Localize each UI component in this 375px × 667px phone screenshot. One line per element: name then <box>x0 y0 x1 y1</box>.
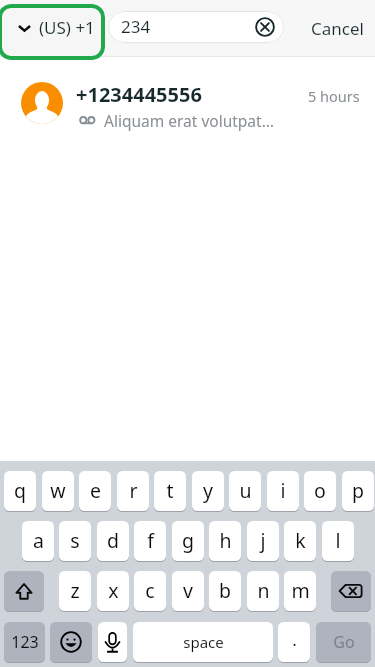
button[interactable]: v <box>172 571 204 611</box>
staticText: l <box>335 527 341 554</box>
staticText: Cancel <box>311 17 364 40</box>
staticText: 5 hours <box>308 86 360 106</box>
button[interactable]: r <box>117 471 149 511</box>
staticText: b <box>219 577 231 604</box>
staticText: w <box>50 477 66 504</box>
staticText: z <box>70 577 80 604</box>
staticText: g <box>182 527 194 554</box>
button[interactable]: 123 <box>4 622 45 662</box>
staticText: f <box>147 527 154 554</box>
button[interactable]: space <box>133 622 273 662</box>
button[interactable]: a <box>22 521 54 561</box>
button[interactable]: Cancel <box>300 0 375 56</box>
staticText: h <box>219 527 232 554</box>
button[interactable]: z <box>59 571 91 611</box>
button[interactable]: n <box>247 571 279 611</box>
button[interactable]: u <box>229 471 261 511</box>
staticText: a <box>33 527 44 554</box>
button[interactable]: c <box>134 571 166 611</box>
button[interactable]: o <box>304 471 336 511</box>
staticText: e <box>90 477 101 504</box>
button[interactable]: . <box>278 622 310 662</box>
button[interactable]: Clear text <box>254 16 276 38</box>
staticText: (US) +1 <box>39 16 95 39</box>
button[interactable]: +1234445556 <box>0 57 375 145</box>
button[interactable]: g <box>172 521 204 561</box>
button[interactable]: Go <box>316 622 371 662</box>
staticText: r <box>129 477 138 504</box>
staticText: d <box>107 527 119 554</box>
staticText: Aliquam erat volutpat… <box>104 110 274 131</box>
staticText: j <box>260 527 266 554</box>
button[interactable]: Emoji <box>50 622 92 662</box>
button[interactable]: w <box>42 471 74 511</box>
staticText: . <box>292 628 297 651</box>
button[interactable]: e <box>79 471 111 511</box>
button[interactable]: Shift <box>4 571 44 611</box>
staticText: 234 <box>121 15 151 38</box>
button[interactable]: f <box>134 521 166 561</box>
staticText: i <box>280 477 286 504</box>
button[interactable]: x <box>97 571 129 611</box>
button[interactable]: d <box>97 521 129 561</box>
button[interactable]: h <box>209 521 241 561</box>
staticText: m <box>291 577 310 604</box>
staticText: o <box>314 477 326 504</box>
staticText: c <box>145 577 155 604</box>
button[interactable]: i <box>267 471 299 511</box>
staticText: n <box>257 577 270 604</box>
staticText: 123 <box>11 631 39 653</box>
staticText: t <box>166 477 174 504</box>
staticText: s <box>70 527 80 554</box>
button[interactable]: j <box>247 521 279 561</box>
staticText: x <box>108 577 119 604</box>
staticText: k <box>295 527 306 554</box>
button[interactable]: (US) +1 <box>0 4 105 60</box>
button[interactable]: m <box>284 571 316 611</box>
button[interactable]: t <box>154 471 186 511</box>
staticText: y <box>203 477 213 504</box>
staticText: v <box>183 577 193 604</box>
button[interactable]: s <box>59 521 91 561</box>
staticText: Go <box>333 631 355 653</box>
button[interactable]: l <box>322 521 354 561</box>
staticText: p <box>352 477 364 504</box>
button[interactable]: Voice input <box>98 622 127 662</box>
staticText: q <box>14 477 26 504</box>
button[interactable]: 234 <box>108 11 284 43</box>
button[interactable]: b <box>209 571 241 611</box>
staticText: +1234445556 <box>76 81 202 108</box>
button[interactable]: k <box>284 521 316 561</box>
button[interactable]: p <box>342 471 374 511</box>
button[interactable]: q <box>4 471 36 511</box>
staticText: u <box>239 477 252 504</box>
button[interactable]: y <box>192 471 224 511</box>
staticText: space <box>183 632 224 652</box>
button[interactable]: Backspace <box>331 571 371 611</box>
